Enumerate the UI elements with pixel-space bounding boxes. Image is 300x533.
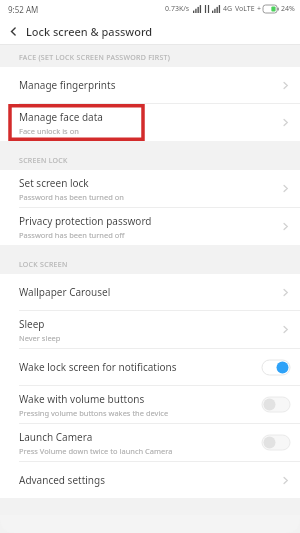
staticText: Sleep [19, 317, 45, 331]
staticText: VoLTE [235, 4, 255, 14]
button[interactable]: Wake lock screen for notifications [0, 349, 300, 385]
staticText: Pressing volume buttons wakes the device [19, 408, 169, 418]
button[interactable]: Privacy protection password [0, 208, 300, 245]
button[interactable]: Manage face data [0, 104, 300, 141]
staticText: Manage fingerprints [19, 78, 116, 92]
staticText: 9:52 AM [8, 4, 39, 15]
staticText: Advanced settings [19, 473, 105, 487]
staticText: Set screen lock [19, 176, 89, 190]
staticText: Launch Camera [19, 430, 93, 444]
button[interactable]: Toggle off [262, 397, 290, 412]
staticText: 4G [223, 4, 233, 14]
staticText: + [257, 4, 262, 14]
staticText: Never sleep [19, 333, 61, 343]
button[interactable]: Toggle on [262, 360, 290, 375]
button[interactable]: Toggle off [262, 435, 290, 450]
button[interactable]: Manage fingerprints [0, 67, 300, 103]
button[interactable]: Advanced settings [0, 462, 300, 498]
staticText: LOCK SCREEN [19, 260, 68, 270]
staticText: SCREEN LOCK [19, 156, 68, 166]
staticText: Press Volume down twice to launch Camera [19, 446, 173, 456]
staticText: 0.73K/s [165, 4, 190, 14]
button[interactable]: Set screen lock [0, 170, 300, 207]
staticText: FACE (SET LOCK SCREEN PASSWORD FIRST) [19, 53, 171, 63]
staticText: 24% [281, 4, 295, 14]
staticText: Face unlock is on [19, 126, 79, 136]
staticText: Wake with volume buttons [19, 392, 145, 406]
button[interactable]: Back [0, 18, 26, 44]
staticText: Lock screen & password [26, 24, 153, 39]
button[interactable]: Wake with volume buttons [0, 386, 300, 423]
staticText: Wallpaper Carousel [19, 285, 111, 299]
button[interactable]: Wallpaper Carousel [0, 274, 300, 310]
staticText: Wake lock screen for notifications [19, 360, 177, 374]
button[interactable]: Sleep [0, 311, 300, 348]
staticText: Password has been turned off [19, 230, 125, 240]
button[interactable]: Launch Camera [0, 424, 300, 461]
staticText: Password has been turned on [19, 192, 124, 202]
staticText: Privacy protection password [19, 214, 152, 228]
staticText: Manage face data [19, 110, 103, 124]
